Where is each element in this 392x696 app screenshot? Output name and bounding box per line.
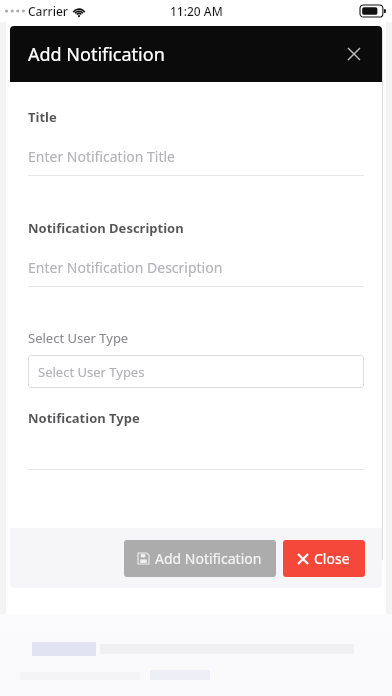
button[interactable]: Add Notification [124, 540, 276, 577]
button[interactable]: Close dialog [336, 36, 372, 72]
staticText: Notification Description [28, 219, 184, 237]
staticText: Close [314, 549, 350, 568]
staticText: 11:20 AM [170, 3, 223, 19]
staticText: Carrier [28, 3, 68, 19]
button[interactable]: Close [283, 540, 365, 577]
button[interactable]: Enter Notification Title [28, 147, 364, 176]
staticText: Select User Types [38, 363, 145, 381]
staticText: Enter Notification Title [28, 147, 175, 166]
staticText: Add Notification [28, 42, 165, 67]
button[interactable]: Enter Notification Description [28, 258, 364, 287]
staticText: Select User Type [28, 329, 129, 347]
staticText: Title [28, 108, 57, 126]
staticText: Add Notification [155, 549, 262, 568]
staticText: Enter Notification Description [28, 258, 223, 277]
button[interactable]: Select User Types [28, 355, 364, 388]
staticText: Notification Type [28, 409, 140, 427]
